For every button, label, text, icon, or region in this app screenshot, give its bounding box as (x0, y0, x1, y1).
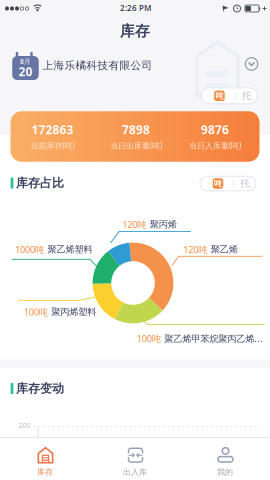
staticText: 库存变动 (16, 381, 64, 396)
staticText: | (231, 178, 235, 189)
staticText: 当日入库量(吨) (189, 140, 241, 151)
staticText: | (233, 90, 237, 101)
staticText: 托 (242, 90, 251, 102)
button[interactable]: 我的 (185, 439, 265, 480)
staticText: 200 (18, 421, 30, 430)
staticText: 8月 (20, 57, 31, 66)
staticText: 聚丙烯塑料 (51, 306, 96, 318)
staticText: 聚乙烯甲苯烷聚丙乙烯... (164, 332, 263, 345)
staticText: 上海乐橘科技有限公司 (42, 59, 152, 72)
staticText: 聚丙烯 (150, 219, 177, 230)
button[interactable]: 库存 (5, 439, 85, 480)
button[interactable]: 吨/托 切换 (200, 176, 256, 191)
staticText: 库存 (37, 467, 53, 477)
staticText: 聚乙烯塑料 (47, 244, 92, 255)
staticText: 120吨 (183, 243, 207, 256)
staticText: 托 (240, 178, 249, 189)
staticText: 20 (18, 63, 32, 79)
staticText: 172863 (32, 122, 74, 138)
staticText: 我的 (217, 467, 233, 477)
staticText: 9876 (201, 122, 229, 138)
staticText: 聚乙烯 (211, 244, 238, 255)
staticText: 当日出库量(吨) (110, 140, 162, 151)
staticText: 库存 (120, 22, 150, 40)
staticText: 吨 (215, 91, 223, 101)
button[interactable]: 吨/托 切换 (201, 88, 257, 104)
staticText: 2:26 PM (120, 3, 151, 13)
staticText: 7898 (122, 122, 150, 138)
staticText: 120吨 (122, 218, 146, 231)
button[interactable]: 出入库 (95, 439, 175, 480)
staticText: 库存占比 (16, 176, 64, 190)
staticText: 100吨 (24, 306, 48, 318)
staticText: 出入库 (123, 467, 147, 477)
staticText: 1000吨 (15, 243, 44, 256)
staticText: 100吨 (137, 332, 161, 345)
button[interactable]: 展开 (245, 58, 258, 70)
staticText: 当前库存(吨) (31, 140, 75, 151)
staticText: 吨 (214, 179, 222, 188)
